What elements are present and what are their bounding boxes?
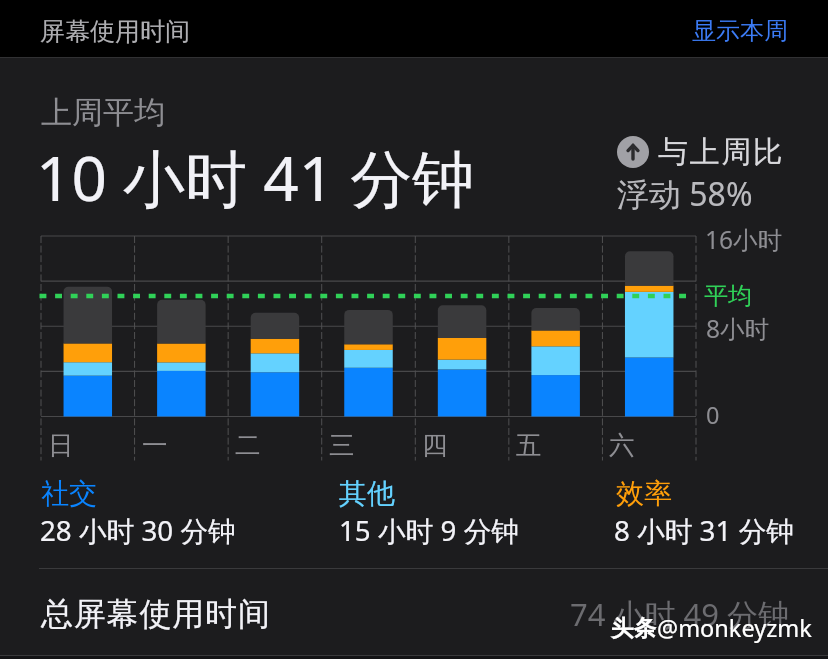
- staticText: @monkeyzmk: [657, 612, 812, 644]
- staticText: 三: [329, 429, 355, 461]
- staticText: 0: [706, 399, 720, 431]
- staticText: 上周平均: [41, 93, 165, 132]
- staticText: 10 小时 41 分钟: [36, 135, 475, 220]
- button[interactable]: 总屏幕使用时间: [0, 569, 828, 659]
- staticText: 效率: [616, 476, 672, 511]
- staticText: 15 小时 9 分钟: [339, 511, 519, 549]
- staticText: 五: [516, 429, 542, 461]
- staticText: 屏幕使用时间: [40, 16, 190, 47]
- staticText: 社交: [41, 476, 97, 511]
- other: Increase from last week: [617, 136, 649, 168]
- button[interactable]: 效率: [610, 470, 805, 548]
- staticText: 8小时: [706, 312, 770, 345]
- button[interactable]: 社交: [35, 470, 305, 548]
- staticText: 四: [422, 429, 448, 461]
- staticText: 74 小时 49 分钟: [570, 593, 790, 635]
- staticText: 8 小时 31 分钟: [614, 511, 794, 549]
- staticText: 16小时: [705, 223, 783, 256]
- staticText: 日: [48, 429, 74, 461]
- staticText: 一: [142, 429, 168, 461]
- staticText: 平均: [704, 281, 752, 311]
- staticText: 总屏幕使用时间: [41, 594, 271, 634]
- staticText: 六: [609, 429, 635, 461]
- button[interactable]: 显示本周: [668, 2, 828, 56]
- staticText: 头条: [611, 614, 656, 642]
- staticText: 浮动 58%: [617, 172, 753, 216]
- staticText: 其他: [339, 476, 395, 511]
- staticText: 显示本周: [692, 16, 788, 46]
- staticText: 28 小时 30 分钟: [40, 511, 236, 549]
- staticText: 二: [235, 429, 261, 461]
- button[interactable]: 其他: [333, 470, 588, 548]
- staticText: 与上周比: [658, 133, 785, 171]
